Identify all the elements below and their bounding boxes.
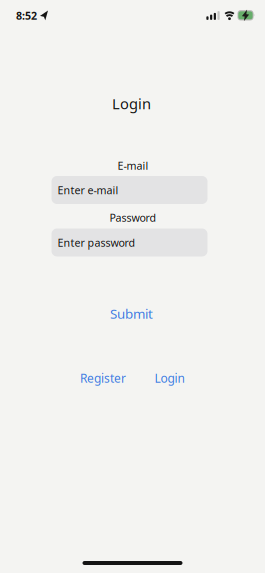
staticText: Submit [110,305,153,322]
staticText: Register [80,370,126,386]
staticText: Password [109,210,156,225]
staticText: Enter e-mail [57,183,118,197]
staticText: 8:52 [16,8,37,23]
button[interactable]: Submit [110,305,153,322]
staticText: Login [112,94,151,113]
button[interactable]: Login [154,370,184,386]
staticText: Enter password [57,235,135,250]
staticText: Login [154,370,184,386]
button[interactable]: Enter e-mail [51,176,207,204]
staticText: E-mail [117,158,148,173]
button[interactable]: Register [80,370,126,386]
button[interactable]: Enter password [51,228,207,256]
